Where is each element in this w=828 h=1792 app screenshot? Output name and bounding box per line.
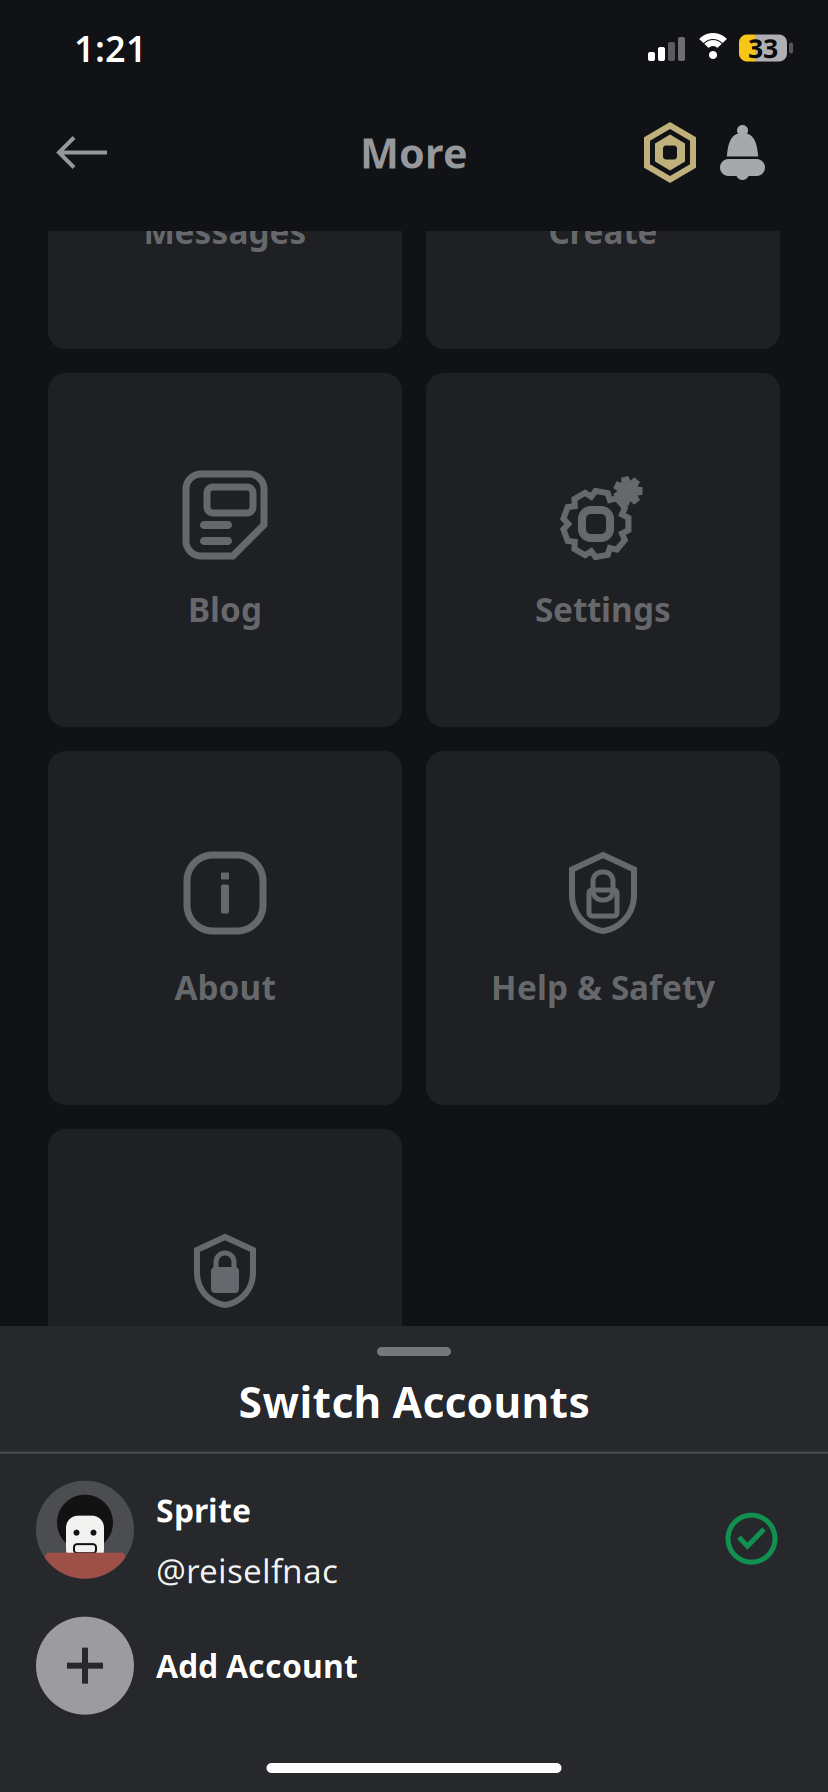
staticText: Help & Safety — [491, 965, 715, 1009]
staticText: Blog — [188, 587, 262, 631]
button[interactable]: Messages — [48, 0, 402, 349]
staticText: Sprite — [156, 1489, 251, 1531]
button[interactable]: Blog — [48, 373, 402, 727]
staticText: Switch Accounts — [238, 1373, 589, 1430]
button[interactable]: About — [48, 751, 402, 1105]
button[interactable]: Back — [37, 109, 129, 195]
staticText: Messages — [143, 209, 306, 253]
staticText: Create — [548, 209, 657, 253]
staticText: 1:21 — [74, 24, 147, 72]
staticText: 33 — [748, 30, 778, 66]
staticText: @reiselfnac — [156, 1548, 338, 1593]
button[interactable]: Privacy — [48, 1129, 402, 1483]
staticText: Add Account — [156, 1644, 358, 1687]
button[interactable]: Sprite — [0, 1454, 828, 1606]
button[interactable]: Settings — [426, 373, 780, 727]
button[interactable]: Help & Safety — [426, 751, 780, 1105]
button[interactable]: Create — [426, 0, 780, 349]
button[interactable]: Robux — [634, 105, 706, 199]
button[interactable]: Add Account — [0, 1606, 828, 1726]
staticText: More — [360, 125, 468, 180]
staticText: About — [174, 965, 275, 1009]
staticText: Settings — [535, 587, 671, 631]
button[interactable]: Notifications — [706, 108, 779, 197]
